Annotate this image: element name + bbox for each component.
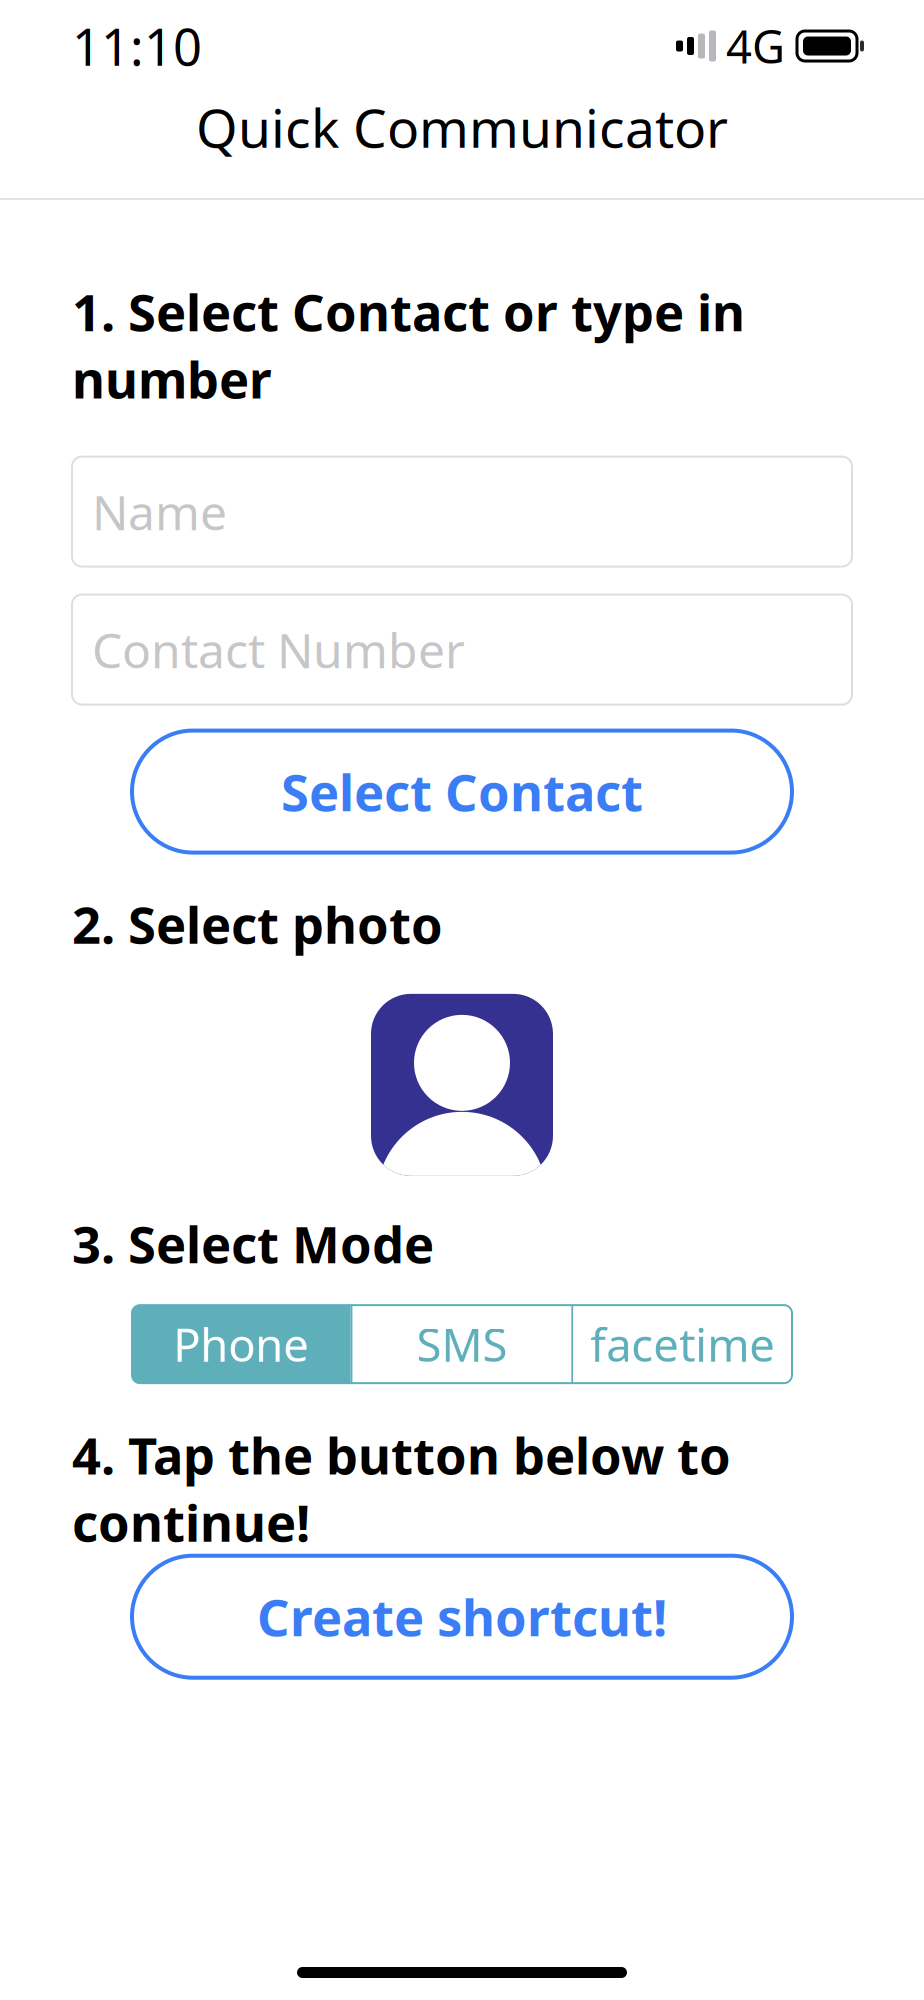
button[interactable]: Phone xyxy=(132,1305,351,1383)
staticText: Contact Number xyxy=(92,618,465,681)
staticText: Select Contact xyxy=(281,758,643,825)
button[interactable]: Contact Number xyxy=(72,595,852,705)
button[interactable]: facetime xyxy=(573,1305,792,1383)
staticText: Create shortcut! xyxy=(257,1583,667,1650)
staticText: Name xyxy=(92,480,227,543)
staticText: 11:10 xyxy=(72,12,202,80)
staticText: 4. Tap the button below to continue! xyxy=(72,1421,731,1556)
button[interactable]: SMS xyxy=(353,1305,571,1383)
staticText: Quick Communicator xyxy=(196,92,728,162)
staticText: 3. Select Mode xyxy=(72,1210,434,1277)
staticText: facetime xyxy=(590,1314,775,1374)
staticText: 2. Select photo xyxy=(72,891,443,958)
button[interactable]: Name xyxy=(72,457,852,567)
staticText: Phone xyxy=(173,1314,309,1374)
staticText: 4G xyxy=(726,16,785,76)
button[interactable]: Create shortcut! xyxy=(132,1556,792,1678)
staticText: 1. Select Contact or type in number xyxy=(72,278,745,413)
staticText: SMS xyxy=(416,1314,507,1374)
button[interactable]: Select Contact xyxy=(132,731,792,853)
